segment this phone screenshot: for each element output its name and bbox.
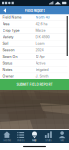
staticText: Status: [2, 61, 12, 65]
staticText: Fields: [17, 139, 24, 142]
staticText: Field Name: [2, 15, 21, 19]
button[interactable]: Stats: [41, 130, 55, 143]
staticText: J. Smith: [35, 74, 48, 78]
staticText: Map: [32, 139, 37, 142]
staticText: Crop Type: [2, 28, 19, 33]
staticText: Active: [35, 61, 45, 65]
staticText: Area: [2, 22, 9, 26]
staticText: Season: [2, 48, 14, 52]
button[interactable]: Fields: [14, 130, 28, 143]
staticText: Loam: [35, 41, 44, 46]
button[interactable]: Field Name: [0, 14, 69, 21]
button[interactable]: Back: [1, 6, 9, 15]
staticText: Irrigated: [35, 68, 48, 72]
staticText: SUBMIT FIELD REPORT: [16, 82, 52, 86]
staticText: Stats: [45, 139, 51, 142]
staticText: 12 Apr: [35, 55, 44, 59]
button[interactable]: Map: [28, 130, 41, 143]
staticText: 42.6 ha: [35, 22, 47, 26]
staticText: Home: [3, 139, 10, 142]
button[interactable]: Area: [0, 21, 69, 27]
button[interactable]: Home: [0, 130, 14, 143]
button[interactable]: Soil: [0, 40, 69, 47]
staticText: North 40: [35, 15, 49, 19]
staticText: DK 4590: [35, 35, 49, 39]
button[interactable]: SUBMIT FIELD REPORT: [0, 79, 69, 90]
staticText: Maize: [35, 28, 45, 33]
staticText: Variety: [2, 35, 13, 39]
staticText: Field Report: [24, 8, 44, 13]
button[interactable]: Sown On: [0, 54, 69, 60]
button[interactable]: Variety: [0, 34, 69, 40]
button[interactable]: Status: [0, 60, 69, 67]
staticText: Me: [61, 139, 64, 142]
button[interactable]: Crop Type: [0, 27, 69, 34]
button[interactable]: Me: [55, 130, 69, 143]
staticText: Notes: [2, 68, 12, 72]
staticText: 2024: [35, 48, 43, 52]
button[interactable]: Notes: [0, 67, 69, 73]
staticText: Soil: [2, 41, 8, 46]
button[interactable]: Owner: [0, 73, 69, 80]
button[interactable]: Season: [0, 47, 69, 53]
staticText: Sown On: [2, 55, 17, 59]
staticText: Owner: [2, 74, 13, 78]
